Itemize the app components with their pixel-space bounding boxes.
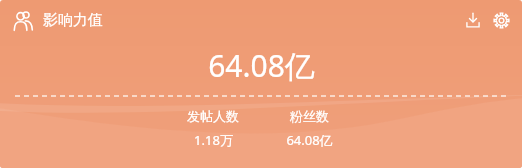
button[interactable]: 发帖人数 [165, 108, 261, 149]
staticText: 64.08亿 [208, 45, 315, 86]
staticText: 影响力值 [43, 11, 103, 30]
staticText: 64.08亿 [286, 131, 333, 149]
button[interactable]: 影响力值 [13, 6, 103, 35]
button[interactable]: 粉丝数 [261, 108, 357, 149]
button[interactable]: Settings [488, 7, 514, 33]
staticText: 1.18万 [194, 131, 233, 149]
button[interactable]: Download [460, 7, 486, 33]
staticText: 粉丝数 [290, 108, 329, 124]
staticText: 发帖人数 [187, 108, 239, 124]
